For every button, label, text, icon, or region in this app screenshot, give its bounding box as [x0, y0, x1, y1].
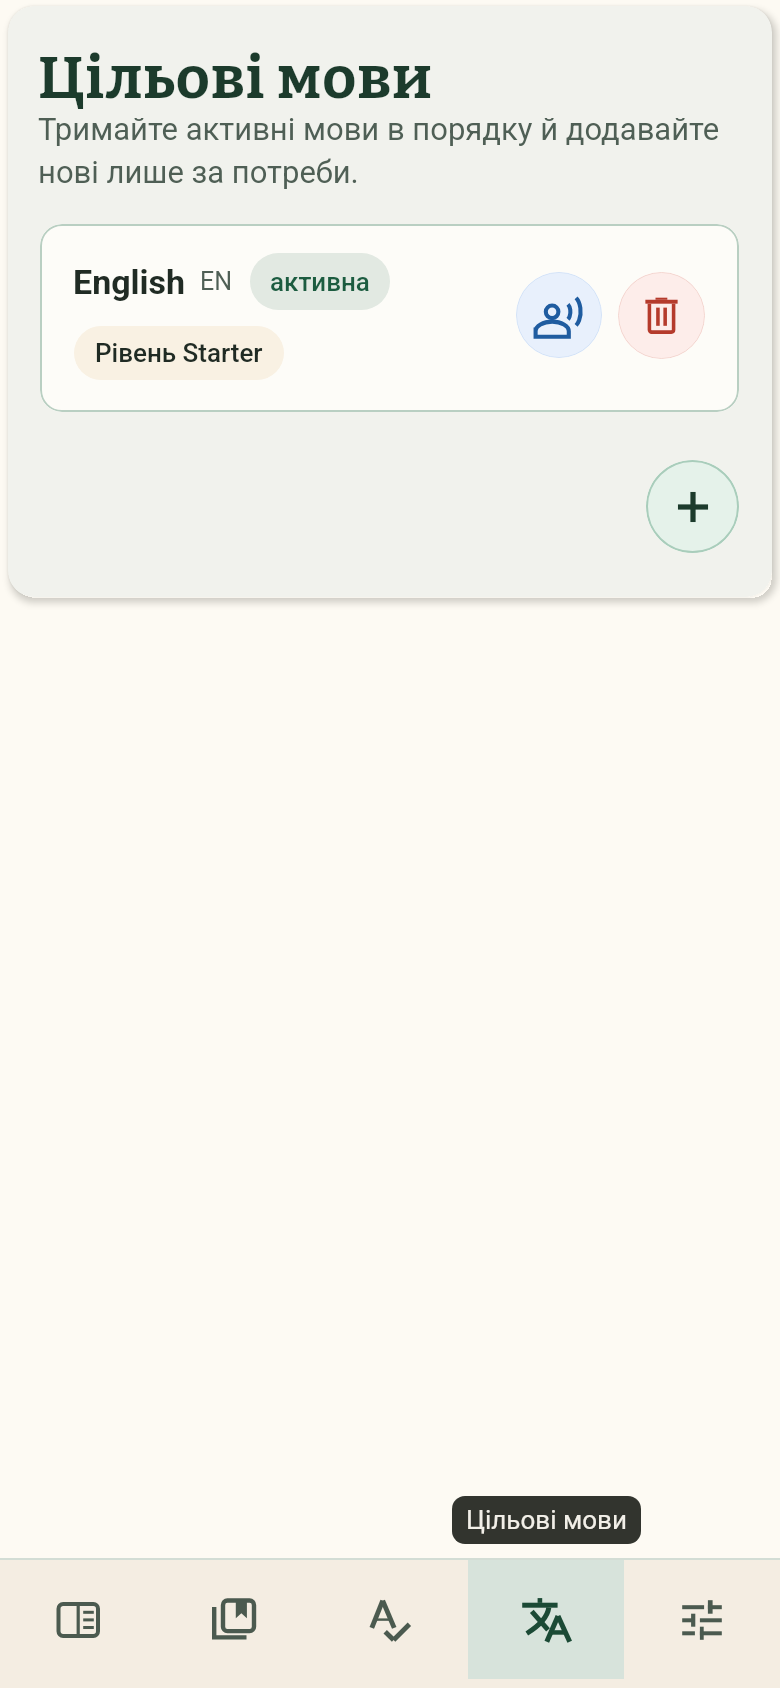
button[interactable]: Читання [0, 1560, 156, 1679]
button[interactable]: English [40, 224, 739, 412]
button[interactable]: Налаштування [624, 1560, 780, 1679]
button[interactable]: Практика вимови [516, 272, 602, 358]
button[interactable]: Словник [312, 1560, 468, 1679]
staticText: активна [270, 267, 370, 297]
staticText: Тримайте активні мови в порядку й додава… [38, 111, 750, 191]
staticText: EN [200, 267, 233, 296]
staticText: English [73, 262, 186, 302]
staticText: Рівень Starter [95, 338, 263, 368]
button[interactable]: Видалити [618, 272, 705, 359]
staticText: Цільові мови [38, 43, 433, 114]
button[interactable]: Додати мову [646, 460, 739, 553]
staticText: Цільові мови [466, 1505, 627, 1535]
button[interactable]: Цільові мови [468, 1560, 624, 1679]
button[interactable]: Бібліотека [156, 1560, 312, 1679]
